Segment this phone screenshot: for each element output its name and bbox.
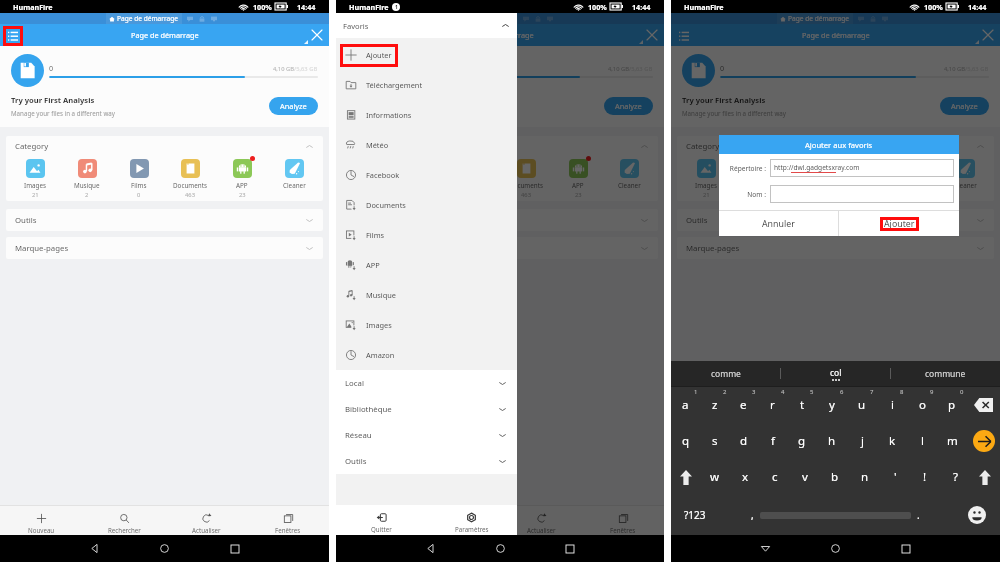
button[interactable]: APP — [336, 250, 517, 280]
button[interactable]: Paramètres — [426, 505, 517, 535]
button[interactable]: h — [817, 423, 847, 459]
button[interactable]: f — [758, 423, 787, 459]
button[interactable]: Marque-pages — [6, 237, 323, 259]
button[interactable]: Actualiser — [165, 506, 247, 535]
button[interactable] — [199, 16, 205, 22]
button[interactable]: c — [760, 459, 790, 495]
button[interactable]: Category — [6, 136, 323, 152]
button[interactable]: Accueil — [493, 541, 508, 556]
button[interactable]: w — [700, 459, 730, 495]
button[interactable]: Accueil — [828, 541, 843, 556]
button[interactable]: Outils — [336, 448, 517, 474]
button[interactable]: Majuscule — [671, 459, 700, 495]
button[interactable]: Outils — [677, 209, 994, 231]
button[interactable] — [858, 16, 864, 22]
button[interactable]: Documents — [165, 159, 215, 199]
button[interactable]: Bibliothèque — [336, 396, 517, 422]
button[interactable]: Fermer — [980, 27, 996, 43]
button[interactable]: Menu — [2, 25, 23, 46]
button[interactable]: z — [700, 387, 729, 423]
button[interactable]: Images — [346, 159, 396, 199]
button[interactable]: APP — [553, 159, 603, 199]
button[interactable]: Fermer — [309, 27, 325, 43]
button[interactable]: Musique — [62, 159, 112, 199]
button[interactable]: Documents — [501, 159, 551, 199]
button[interactable]: Fenêtres — [582, 506, 664, 535]
button[interactable]: Favoris — [336, 13, 517, 38]
button[interactable]: a — [671, 387, 700, 423]
button[interactable]: Fermer — [644, 27, 660, 43]
button[interactable]: Actualiser — [836, 506, 918, 535]
button[interactable]: Menu — [673, 25, 694, 46]
button[interactable]: Informations — [336, 100, 517, 130]
button[interactable]: Documents — [836, 159, 886, 199]
button[interactable]: n — [850, 459, 880, 495]
button[interactable]: ?123 — [671, 495, 718, 535]
button[interactable]: ' — [880, 459, 910, 495]
button[interactable]: Musique — [336, 280, 517, 310]
button[interactable]: t — [787, 387, 817, 423]
button[interactable]: p — [937, 387, 967, 423]
button[interactable]: v — [790, 459, 820, 495]
button[interactable]: Annuler — [719, 211, 838, 236]
button[interactable]: Marque-pages — [677, 237, 994, 259]
button[interactable]: Nouveau — [0, 506, 83, 535]
button[interactable] — [535, 16, 541, 22]
button[interactable]: Quitter — [336, 505, 426, 535]
button[interactable]: APP — [217, 159, 267, 199]
button[interactable]: Page de démarrage — [109, 14, 179, 23]
button[interactable]: Fenêtres — [918, 506, 1000, 535]
button[interactable]: Téléchargement — [336, 70, 517, 100]
button[interactable]: l — [907, 423, 937, 459]
button[interactable]: Menu — [338, 25, 359, 46]
button[interactable]: q — [671, 423, 700, 459]
button[interactable]: Facebook — [336, 160, 517, 190]
button[interactable]: APP — [888, 159, 938, 199]
button[interactable]: Rechercher — [83, 506, 165, 535]
button[interactable]: Cleaner — [940, 159, 990, 199]
button[interactable]: Images — [681, 159, 731, 199]
button[interactable]: commune — [891, 361, 1000, 386]
button[interactable]: Retour arrière — [967, 387, 1000, 423]
button[interactable]: ! — [910, 459, 940, 495]
button[interactable]: j — [847, 423, 877, 459]
button[interactable]: Météo — [336, 130, 517, 160]
button[interactable]: Outils — [6, 209, 323, 231]
button[interactable]: Applications récentes — [562, 541, 577, 556]
button[interactable]: Local — [336, 370, 517, 396]
button[interactable]: Actualiser — [500, 506, 582, 535]
button[interactable]: Amazon — [336, 340, 517, 370]
button[interactable]: Nouveau — [336, 506, 418, 535]
button[interactable]: e — [729, 387, 758, 423]
button[interactable]: Page de démarrage — [780, 14, 850, 23]
button[interactable]: Ajouter — [839, 211, 959, 236]
button[interactable] — [787, 495, 884, 535]
button[interactable]: ? — [940, 459, 970, 495]
button[interactable]: Analyze — [604, 97, 653, 115]
button[interactable]: Analyze — [940, 97, 989, 115]
button[interactable]: x — [730, 459, 760, 495]
button[interactable]: Rechercher — [418, 506, 500, 535]
button[interactable]: Retour — [423, 541, 438, 556]
button[interactable]: col — [781, 361, 890, 386]
button[interactable]: Retour — [87, 541, 102, 556]
button[interactable]: r — [758, 387, 787, 423]
button[interactable]: Ajouter — [336, 40, 517, 70]
button[interactable]: Rechercher — [754, 506, 836, 535]
button[interactable]: d — [729, 423, 758, 459]
button[interactable]: g — [787, 423, 817, 459]
button[interactable]: s — [700, 423, 729, 459]
button[interactable] — [211, 16, 217, 22]
button[interactable]: Musique — [397, 159, 447, 199]
button[interactable]: Category — [342, 136, 658, 152]
button[interactable]: u — [847, 387, 877, 423]
button[interactable] — [882, 16, 888, 22]
button[interactable]: Cleaner — [604, 159, 654, 199]
button[interactable]: Documents — [336, 190, 517, 220]
button[interactable]: Images — [336, 310, 517, 340]
button[interactable]: Nouveau — [671, 506, 754, 535]
button[interactable]: Emoji — [953, 495, 1000, 535]
button[interactable]: i — [877, 387, 907, 423]
button[interactable]: m — [937, 423, 967, 459]
